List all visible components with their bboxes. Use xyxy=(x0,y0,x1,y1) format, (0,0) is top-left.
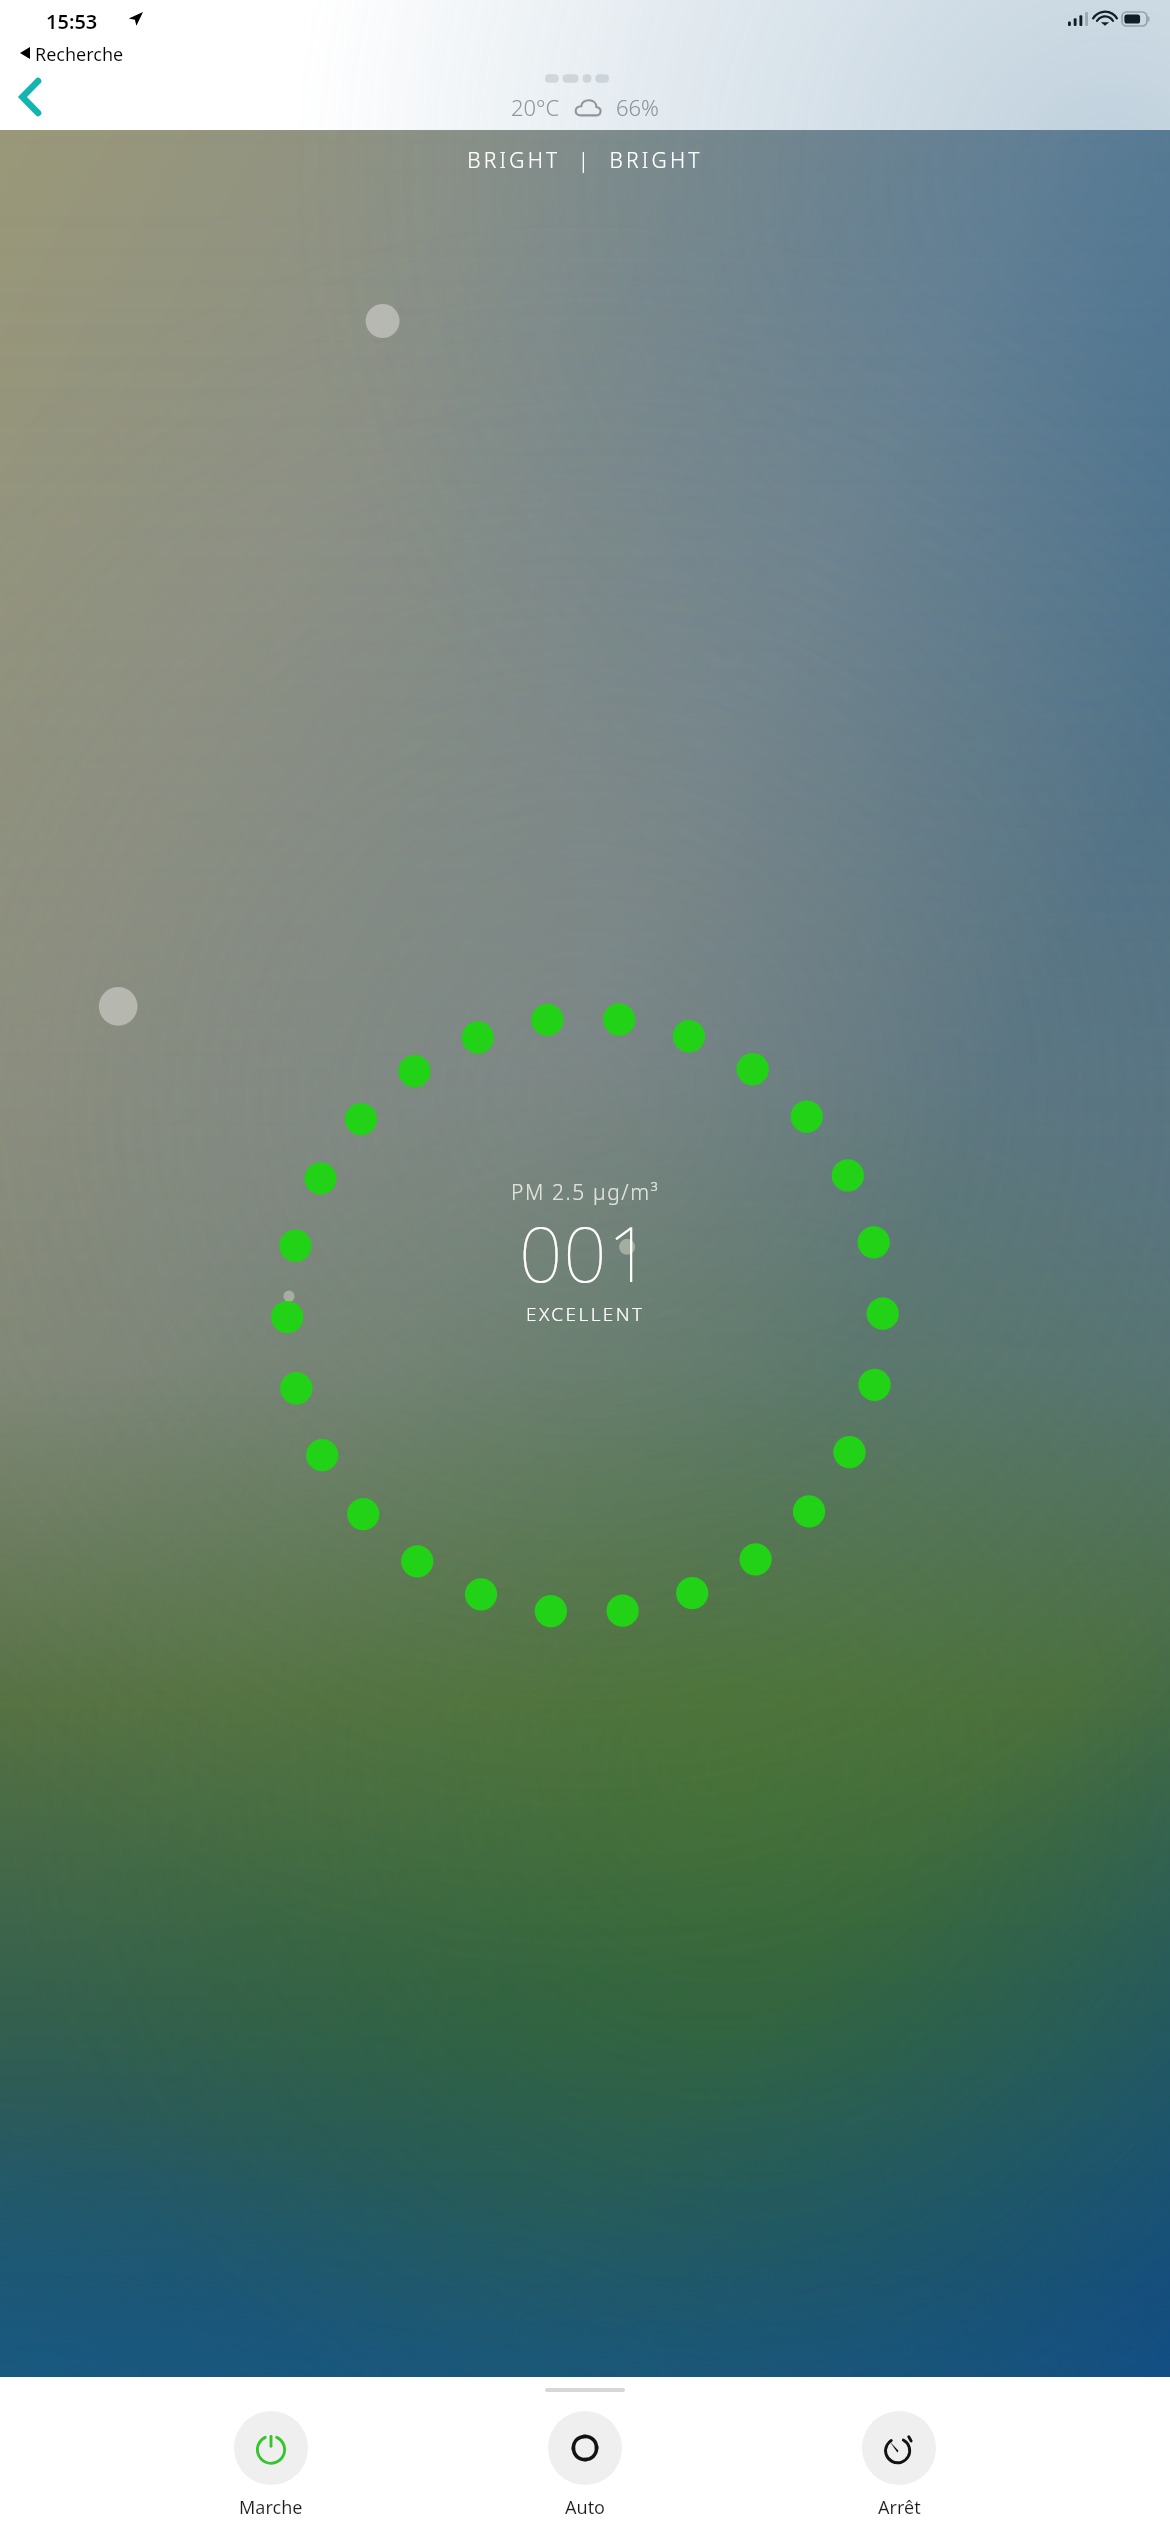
staticText: Arrêt xyxy=(878,2495,921,2520)
staticText: Recherche xyxy=(35,42,124,64)
staticText: 15:53 xyxy=(46,8,98,35)
button[interactable]: Back xyxy=(4,71,56,123)
button[interactable]: Timer off xyxy=(856,2409,942,2522)
staticText: 66% xyxy=(616,92,659,122)
staticText: PM 2.5 µg/m³ xyxy=(511,1178,660,1207)
staticText: BRIGHT | BRIGHT xyxy=(467,146,703,175)
staticText: Marche xyxy=(239,2495,303,2520)
staticText: 001 xyxy=(519,1201,652,1305)
button[interactable]: Auto mode xyxy=(542,2409,628,2522)
button[interactable]: Power on xyxy=(228,2409,314,2522)
staticText: Auto xyxy=(565,2495,606,2520)
staticText: 20°C xyxy=(511,92,560,122)
staticText: EXCELLENT xyxy=(526,1301,645,1327)
